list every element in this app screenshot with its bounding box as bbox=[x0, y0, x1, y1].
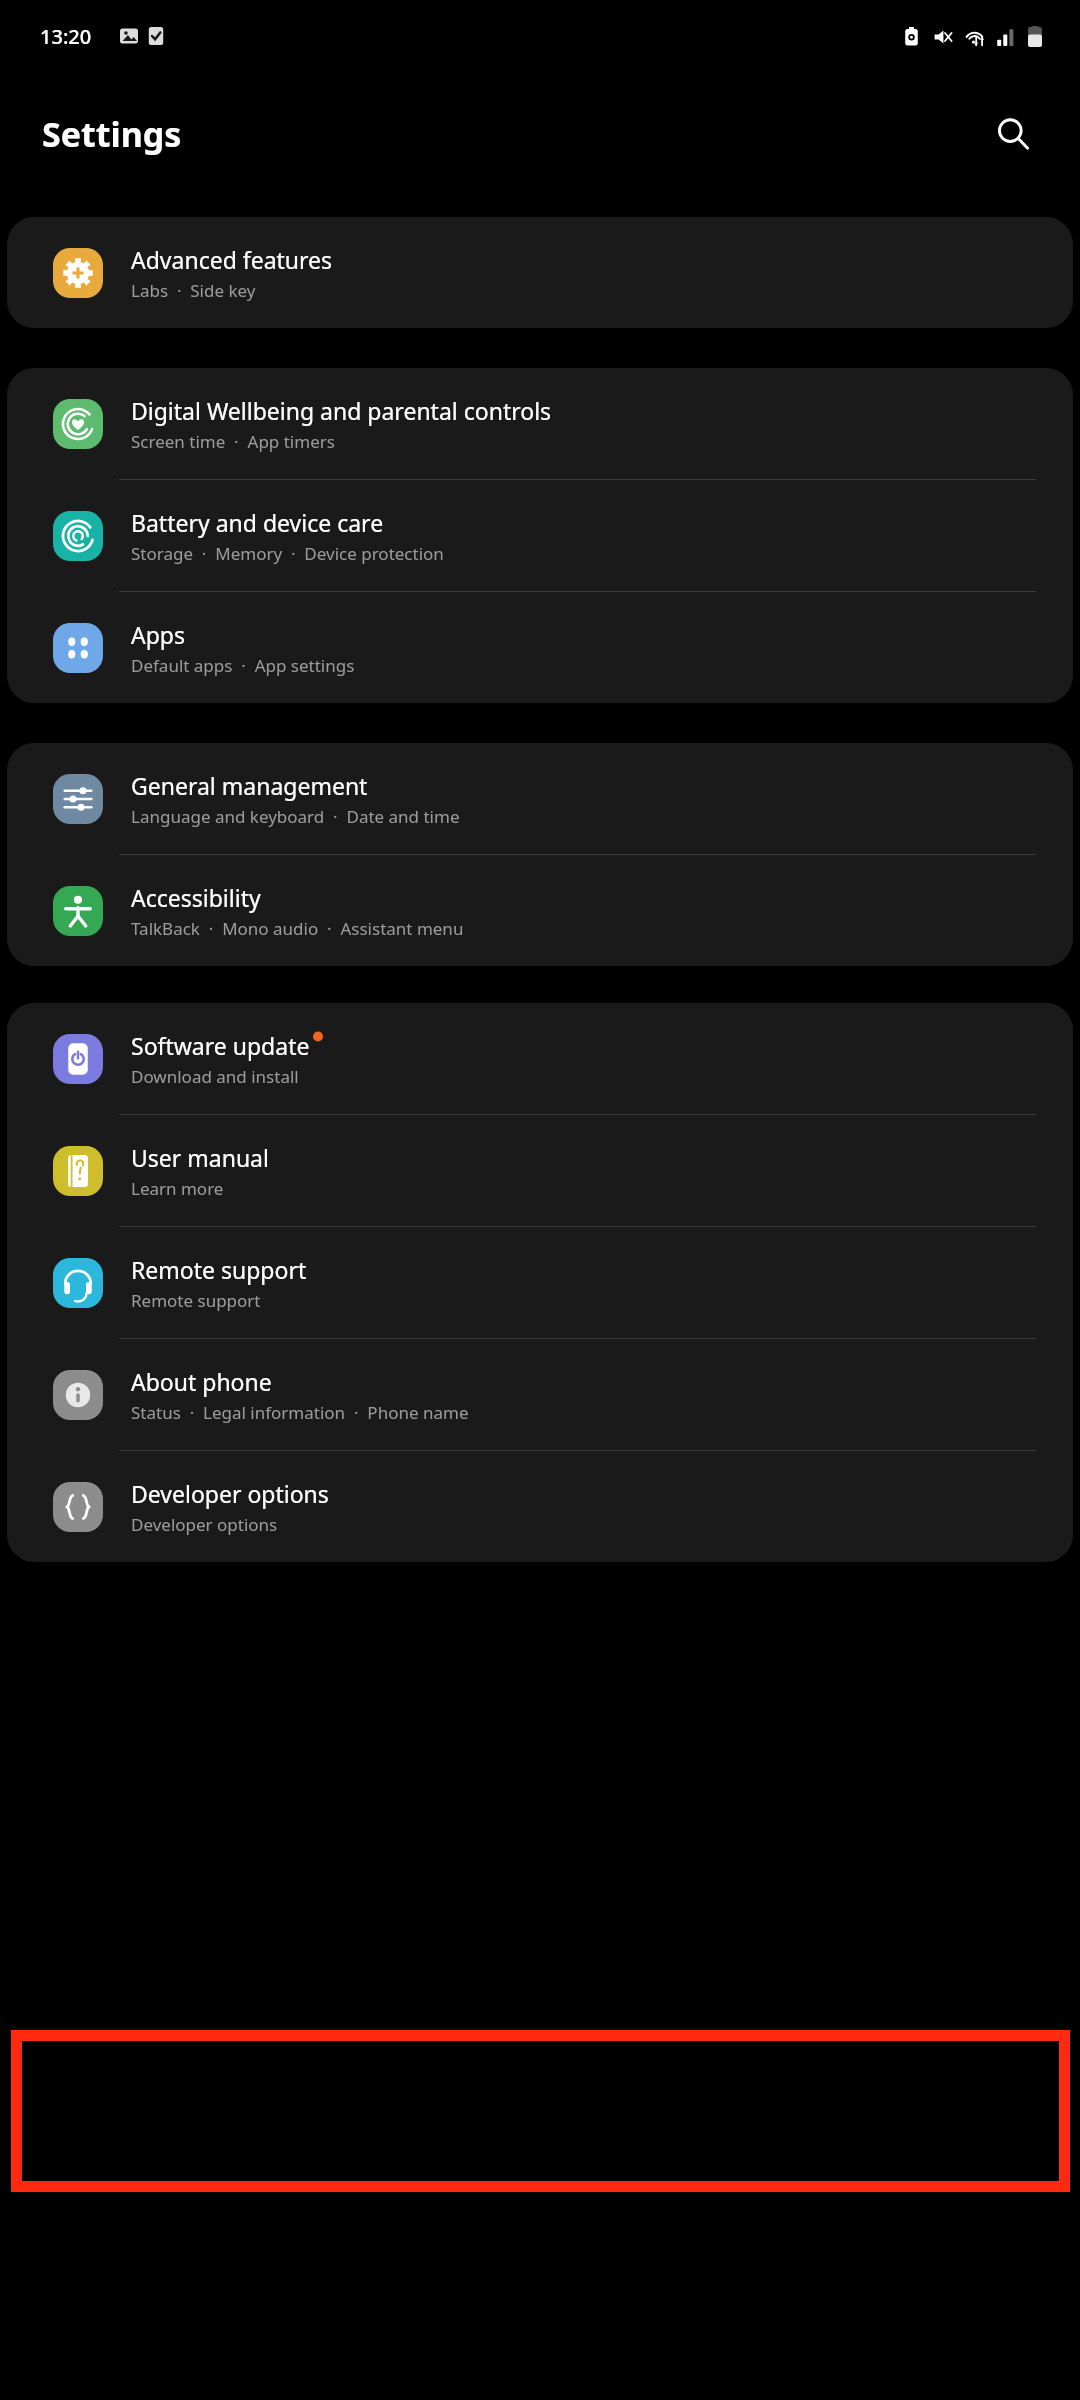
staticText: Settings bbox=[42, 111, 182, 157]
staticText: Default apps · App settings bbox=[131, 654, 355, 677]
button[interactable]: Software update bbox=[7, 1003, 1073, 1114]
staticText: Software update bbox=[131, 1030, 310, 1061]
staticText: Apps bbox=[131, 619, 186, 650]
button[interactable]: Advanced features bbox=[7, 217, 1073, 328]
staticText: Accessibility bbox=[131, 882, 261, 913]
staticText: Language and keyboard · Date and time bbox=[131, 805, 460, 828]
staticText: Advanced features bbox=[131, 244, 333, 275]
button[interactable]: User manual bbox=[7, 1115, 1073, 1226]
staticText: 13:20 bbox=[40, 23, 92, 50]
button[interactable]: General management bbox=[7, 743, 1073, 854]
staticText: General management bbox=[131, 770, 368, 801]
button[interactable]: Accessibility bbox=[7, 855, 1073, 966]
staticText: Storage · Memory · Device protection bbox=[131, 542, 444, 565]
button[interactable]: About phone bbox=[7, 1339, 1073, 1450]
staticText: TalkBack · Mono audio · Assistant menu bbox=[131, 917, 464, 940]
staticText: About phone bbox=[131, 1366, 272, 1397]
staticText: Download and install bbox=[131, 1065, 299, 1088]
staticText: Battery and device care bbox=[131, 507, 384, 538]
button[interactable]: Remote support bbox=[7, 1227, 1073, 1338]
button[interactable]: Battery and device care bbox=[7, 480, 1073, 591]
staticText: Labs · Side key bbox=[131, 279, 256, 302]
staticText: Developer options bbox=[131, 1478, 329, 1509]
staticText: User manual bbox=[131, 1142, 269, 1173]
button[interactable]: Search bbox=[982, 103, 1044, 165]
staticText: Remote support bbox=[131, 1254, 307, 1285]
button[interactable]: Digital Wellbeing and parental controls bbox=[7, 368, 1073, 479]
button[interactable]: Apps bbox=[7, 592, 1073, 703]
staticText: Screen time · App timers bbox=[131, 430, 335, 453]
staticText: Status · Legal information · Phone name bbox=[131, 1401, 469, 1424]
staticText: Digital Wellbeing and parental controls bbox=[131, 395, 552, 426]
staticText: Remote support bbox=[131, 1289, 261, 1312]
staticText: Learn more bbox=[131, 1177, 224, 1200]
button[interactable]: Developer options bbox=[7, 1451, 1073, 1562]
staticText: Developer options bbox=[131, 1513, 278, 1536]
